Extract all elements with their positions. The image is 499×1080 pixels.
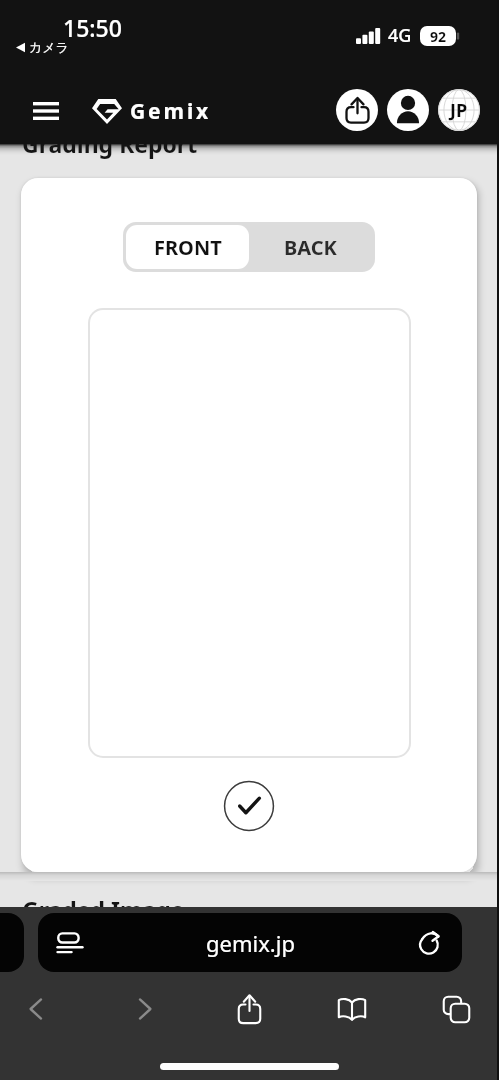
staticText: JP bbox=[450, 98, 468, 123]
staticText: カメラ bbox=[29, 39, 69, 55]
button[interactable]: Share bbox=[336, 89, 378, 131]
staticText: 15:50 bbox=[63, 12, 122, 43]
button[interactable]: Reload bbox=[412, 925, 448, 961]
staticText: BACK bbox=[284, 234, 337, 261]
button[interactable]: Language bbox=[438, 89, 480, 131]
staticText: FRONT bbox=[154, 234, 222, 261]
button[interactable]: Share bbox=[227, 987, 271, 1031]
button[interactable]: Confirm bbox=[223, 780, 275, 832]
button[interactable]: Page settings bbox=[52, 925, 88, 961]
button[interactable]: BACK bbox=[249, 225, 372, 269]
staticText: gemix.jp bbox=[206, 928, 295, 958]
button[interactable]: gemix.jp bbox=[38, 913, 462, 972]
staticText: Grading Report bbox=[22, 128, 198, 159]
staticText: Gemix bbox=[130, 97, 212, 126]
button[interactable]: Menu bbox=[33, 102, 59, 120]
button[interactable]: Bookmarks bbox=[330, 987, 374, 1031]
staticText: Graded Image bbox=[22, 894, 185, 925]
staticText: 4G bbox=[388, 23, 412, 48]
button[interactable]: Forward bbox=[123, 987, 167, 1031]
button[interactable]: Tabs bbox=[434, 987, 478, 1031]
button[interactable]: Back bbox=[14, 987, 58, 1031]
button[interactable]: Account bbox=[387, 89, 429, 131]
button[interactable]: FRONT bbox=[126, 225, 249, 269]
staticText: 92 bbox=[430, 27, 447, 46]
